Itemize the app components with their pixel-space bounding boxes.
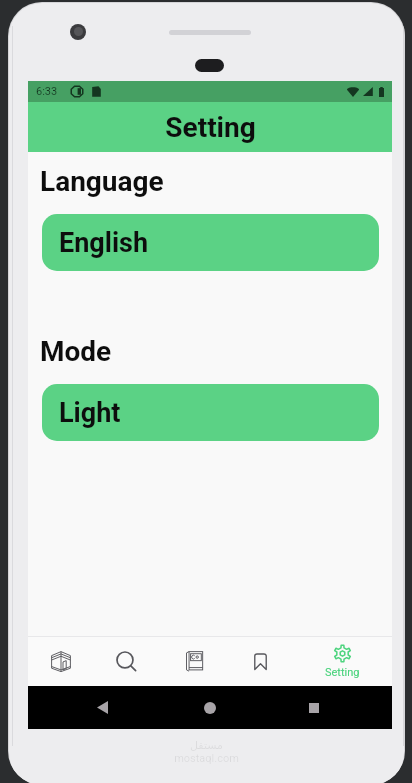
button[interactable]: Home	[194, 686, 226, 729]
button[interactable]: Quran	[163, 636, 225, 686]
button[interactable]: Light	[42, 384, 379, 441]
button[interactable]: Recents	[298, 686, 330, 729]
staticText: Language	[40, 165, 164, 198]
staticText: Setting	[165, 111, 256, 144]
button[interactable]: Search	[95, 636, 157, 686]
button[interactable]: Bookmarks	[229, 636, 291, 686]
staticText: Light	[59, 397, 121, 429]
staticText: English	[59, 227, 149, 259]
button[interactable]: Back	[86, 686, 118, 729]
staticText: Setting	[325, 666, 360, 679]
button[interactable]: English	[42, 214, 379, 271]
button[interactable]: Kaaba	[30, 636, 92, 686]
staticText: Mode	[40, 335, 112, 368]
button[interactable]: Setting	[309, 636, 375, 686]
staticText: 6:33	[36, 85, 58, 98]
staticText: مستقل mostaql.com	[174, 739, 239, 765]
